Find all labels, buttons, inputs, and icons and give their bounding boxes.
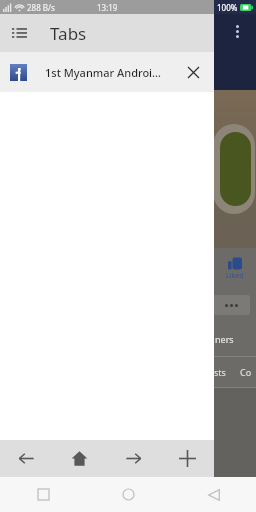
staticText: 100% xyxy=(217,2,238,13)
button[interactable]: More xyxy=(212,295,250,315)
staticText: 1st Myanmar Androi… xyxy=(45,65,178,80)
button[interactable]: Forward xyxy=(106,440,160,477)
staticText: 288 B/s xyxy=(27,2,55,13)
button[interactable]: Home xyxy=(53,440,106,477)
button[interactable]: Home xyxy=(86,477,171,512)
staticText: Tabs xyxy=(50,22,87,45)
button[interactable]: 1st Myanmar Androi… xyxy=(0,52,214,92)
button[interactable]: More options xyxy=(224,18,250,44)
staticText: ners xyxy=(215,333,234,345)
staticText: Liked xyxy=(226,271,244,281)
button[interactable]: Back xyxy=(0,440,53,477)
button[interactable]: Close tab xyxy=(178,57,208,87)
button[interactable]: Menu xyxy=(0,14,38,52)
button[interactable]: New tab xyxy=(160,440,214,477)
button[interactable]: Back xyxy=(171,477,256,512)
staticText: 13:19 xyxy=(97,2,118,13)
staticText: sts xyxy=(214,366,226,378)
button[interactable]: Recent apps xyxy=(0,477,86,512)
staticText: Co xyxy=(240,366,252,378)
